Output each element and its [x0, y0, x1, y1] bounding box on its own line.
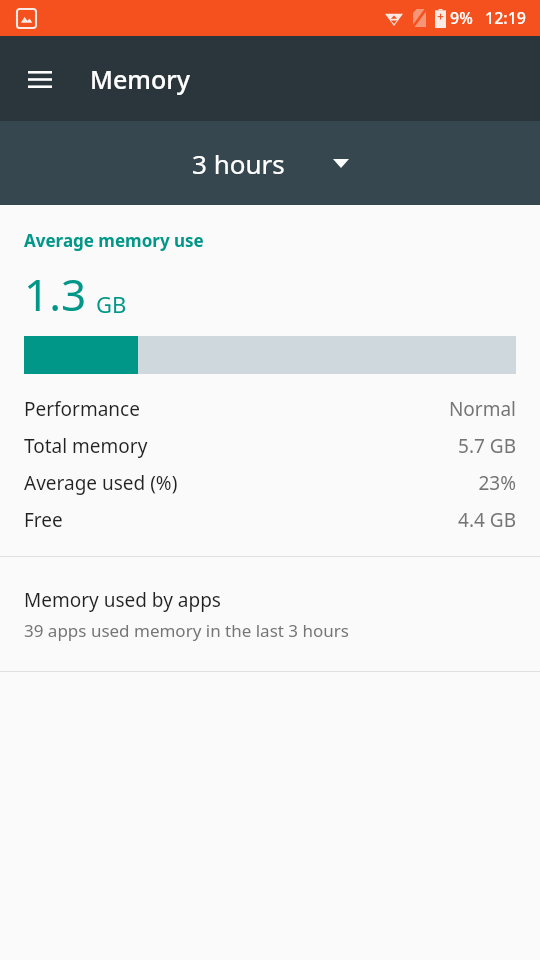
- button[interactable]: Average used (%): [0, 464, 540, 501]
- staticText: 39 apps used memory in the last 3 hours: [24, 619, 349, 642]
- button[interactable]: Total memory: [0, 427, 540, 464]
- button[interactable]: 3 hours: [0, 121, 540, 205]
- staticText: GB: [96, 289, 127, 319]
- button[interactable]: Free: [0, 501, 540, 538]
- staticText: Memory: [90, 62, 191, 96]
- button[interactable]: Memory used by apps: [0, 557, 540, 671]
- button[interactable]: Performance: [0, 390, 540, 427]
- staticText: 4.4 GB: [458, 507, 516, 533]
- staticText: 1.3: [24, 264, 87, 324]
- staticText: 12:19: [485, 7, 526, 29]
- staticText: 23%: [478, 470, 516, 496]
- staticText: Memory used by apps: [24, 587, 221, 613]
- button[interactable]: Open navigation drawer: [12, 51, 68, 107]
- staticText: Total memory: [24, 433, 148, 459]
- staticText: 3 hours: [192, 146, 285, 181]
- staticText: 5.7 GB: [458, 433, 516, 459]
- staticText: Average memory use: [24, 229, 204, 252]
- staticText: Average used (%): [24, 470, 178, 496]
- staticText: Free: [24, 507, 63, 533]
- staticText: Normal: [448, 396, 516, 422]
- staticText: 9%: [450, 7, 473, 29]
- staticText: Performance: [24, 396, 140, 422]
